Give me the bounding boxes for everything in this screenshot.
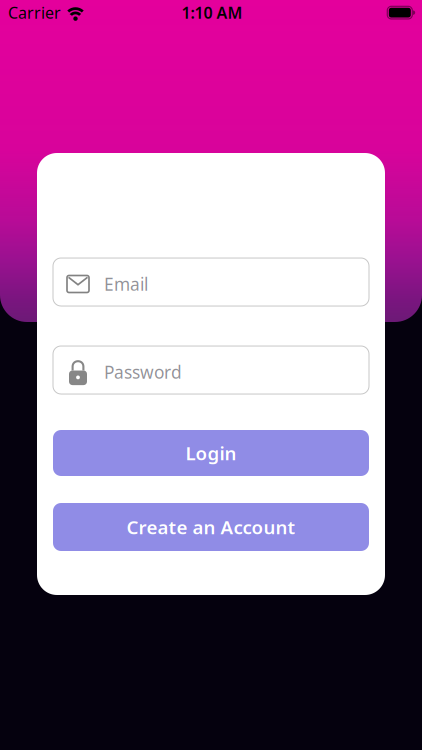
staticText: Password bbox=[104, 360, 182, 383]
button[interactable]: Create an Account bbox=[53, 503, 369, 551]
staticText: Email bbox=[104, 272, 148, 295]
button[interactable]: Email bbox=[53, 258, 369, 306]
button[interactable]: Password bbox=[53, 346, 369, 394]
button[interactable]: Login bbox=[53, 430, 369, 476]
staticText: Carrier bbox=[8, 2, 61, 23]
staticText: Create an Account bbox=[126, 515, 295, 539]
staticText: Login bbox=[185, 441, 236, 465]
staticText: 1:10 AM bbox=[181, 2, 242, 23]
